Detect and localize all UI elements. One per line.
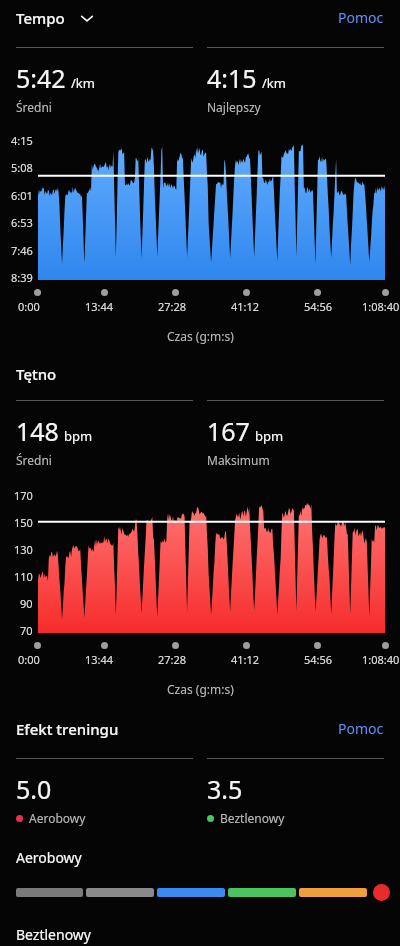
staticText: 70 [20,623,33,638]
staticText: 13:44 [85,652,114,667]
staticText: 0:00 [18,299,40,314]
staticText: 54:56 [304,652,333,667]
staticText: 6:53 [11,215,33,230]
staticText: /km [71,74,95,92]
staticText: 7:46 [11,243,33,258]
staticText: Pomoc [338,719,384,738]
staticText: 5:42 [16,61,66,95]
staticText: 170 [14,488,33,503]
staticText: 4:15 [11,133,33,148]
staticText: 1:08:40 [362,299,400,314]
staticText: 54:56 [304,299,333,314]
staticText: Czas (g:m:s) [167,328,234,344]
staticText: bpm [64,427,93,445]
staticText: Najlepszy [207,99,261,115]
staticText: 3.5 [207,772,243,806]
staticText: 8:39 [11,270,33,285]
staticText: Beztlenowy [16,925,91,944]
staticText: 13:44 [85,299,114,314]
staticText: Beztlenowy [220,810,285,826]
staticText: Aerobowy [16,848,82,867]
staticText: 27:28 [158,652,187,667]
staticText: Efekt treningu [16,719,119,739]
staticText: 90 [20,596,33,611]
staticText: 0:00 [18,652,40,667]
staticText: Tempo [16,8,65,28]
staticText: Średni [16,99,52,115]
staticText: Aerobowy [29,810,86,826]
button[interactable]: Pomoc [336,715,386,742]
staticText: Średni [16,452,52,468]
staticText: 150 [14,515,33,530]
staticText: 41:12 [231,299,260,314]
staticText: Pomoc [338,8,384,27]
staticText: Czas (g:m:s) [167,681,234,697]
staticText: 130 [14,542,33,557]
staticText: Maksimum [207,452,270,468]
staticText: 1:08:40 [362,652,400,667]
staticText: /km [262,74,286,92]
staticText: 5.0 [16,772,52,806]
staticText: 5:08 [11,160,33,175]
staticText: 167 [207,414,250,448]
staticText: 27:28 [158,299,187,314]
staticText: bpm [255,427,284,445]
button[interactable]: Zmień metrykę [77,8,97,28]
button[interactable]: Pomoc [336,4,386,31]
staticText: 41:12 [231,652,260,667]
staticText: 148 [16,414,59,448]
staticText: Tętno [16,364,57,384]
staticText: 110 [14,569,33,584]
staticText: 4:15 [207,61,257,95]
staticText: 6:01 [11,188,33,203]
